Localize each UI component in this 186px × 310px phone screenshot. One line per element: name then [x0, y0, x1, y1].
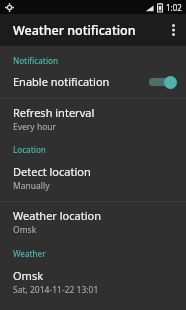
staticText: Weather notification — [13, 22, 136, 39]
staticText: Weather location — [13, 208, 101, 223]
staticText: Omsk — [13, 224, 37, 236]
staticText: 1:02 — [166, 2, 182, 13]
staticText: Enable notification — [13, 74, 147, 89]
button[interactable]: More options — [160, 14, 186, 46]
staticText: Omsk — [13, 268, 44, 283]
staticText: Manually — [13, 180, 50, 192]
staticText: Detect location — [13, 164, 91, 179]
button[interactable]: Enable notification — [0, 69, 186, 94]
staticText: Notification — [13, 55, 58, 66]
button[interactable]: Detect location — [0, 158, 186, 198]
button[interactable]: Enable notification — [147, 74, 177, 90]
button[interactable]: Refresh interval — [0, 99, 186, 139]
button[interactable]: Weather location — [0, 202, 186, 242]
staticText: Location — [13, 144, 46, 155]
staticText: Sat, 2014-11-22 13:01 — [13, 284, 99, 296]
staticText: Refresh interval — [13, 105, 95, 120]
button[interactable]: Omsk — [0, 262, 186, 302]
staticText: Every hour — [13, 121, 57, 133]
staticText: Weather — [13, 248, 46, 259]
